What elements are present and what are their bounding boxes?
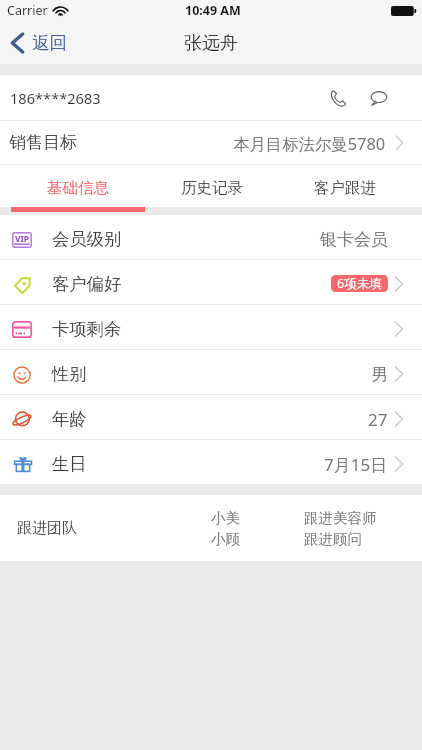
staticText: 会员级别 xyxy=(52,228,122,250)
staticText: 年龄 xyxy=(52,408,87,430)
staticText: 10:49 AM xyxy=(185,2,241,19)
button[interactable]: 客户偏好 xyxy=(0,260,422,304)
staticText: 客户跟进 xyxy=(314,178,376,198)
staticText: Carrier xyxy=(7,2,48,19)
staticText: 7月15日 xyxy=(324,453,388,476)
button[interactable]: 跟进团队 xyxy=(0,495,422,561)
button[interactable]: 基础信息 xyxy=(11,165,145,207)
staticText: 男 xyxy=(371,364,388,385)
button[interactable]: 返回 xyxy=(0,22,80,64)
button[interactable]: 年龄 xyxy=(0,395,422,439)
staticText: 基础信息 xyxy=(47,178,109,198)
staticText: 小美 xyxy=(211,509,240,527)
button[interactable]: 186****2683 xyxy=(0,75,422,120)
staticText: 返回 xyxy=(32,32,68,54)
staticText: 生日 xyxy=(52,453,87,475)
button[interactable]: 卡项剩余 xyxy=(0,305,422,349)
button[interactable]: 客户跟进 xyxy=(278,165,411,207)
staticText: 张远舟 xyxy=(184,32,238,55)
staticText: 银卡会员 xyxy=(320,229,388,250)
staticText: 27 xyxy=(368,408,388,431)
button[interactable]: 销售目标 xyxy=(0,121,422,164)
button[interactable]: 性别 xyxy=(0,350,422,394)
staticText: 销售目标 xyxy=(9,132,77,153)
staticText: VIP xyxy=(15,233,30,245)
staticText: 6项未填 xyxy=(337,275,382,292)
staticText: 跟进顾问 xyxy=(304,530,362,548)
button[interactable]: 历史记录 xyxy=(145,165,278,207)
staticText: 卡项剩余 xyxy=(52,318,122,340)
button[interactable]: 生日 xyxy=(0,440,422,484)
staticText: 186****2683 xyxy=(10,88,101,108)
staticText: 历史记录 xyxy=(181,178,243,198)
button[interactable]: Call xyxy=(326,86,350,110)
button[interactable]: Message xyxy=(367,86,391,110)
staticText: 跟进美容师 xyxy=(304,509,377,527)
button[interactable]: VIP xyxy=(0,215,422,259)
staticText: 跟进团队 xyxy=(17,519,77,538)
staticText: 性别 xyxy=(52,363,87,385)
staticText: 小顾 xyxy=(211,530,240,548)
staticText: 客户偏好 xyxy=(52,273,122,295)
staticText: 本月目标法尔曼5780 xyxy=(233,132,386,154)
